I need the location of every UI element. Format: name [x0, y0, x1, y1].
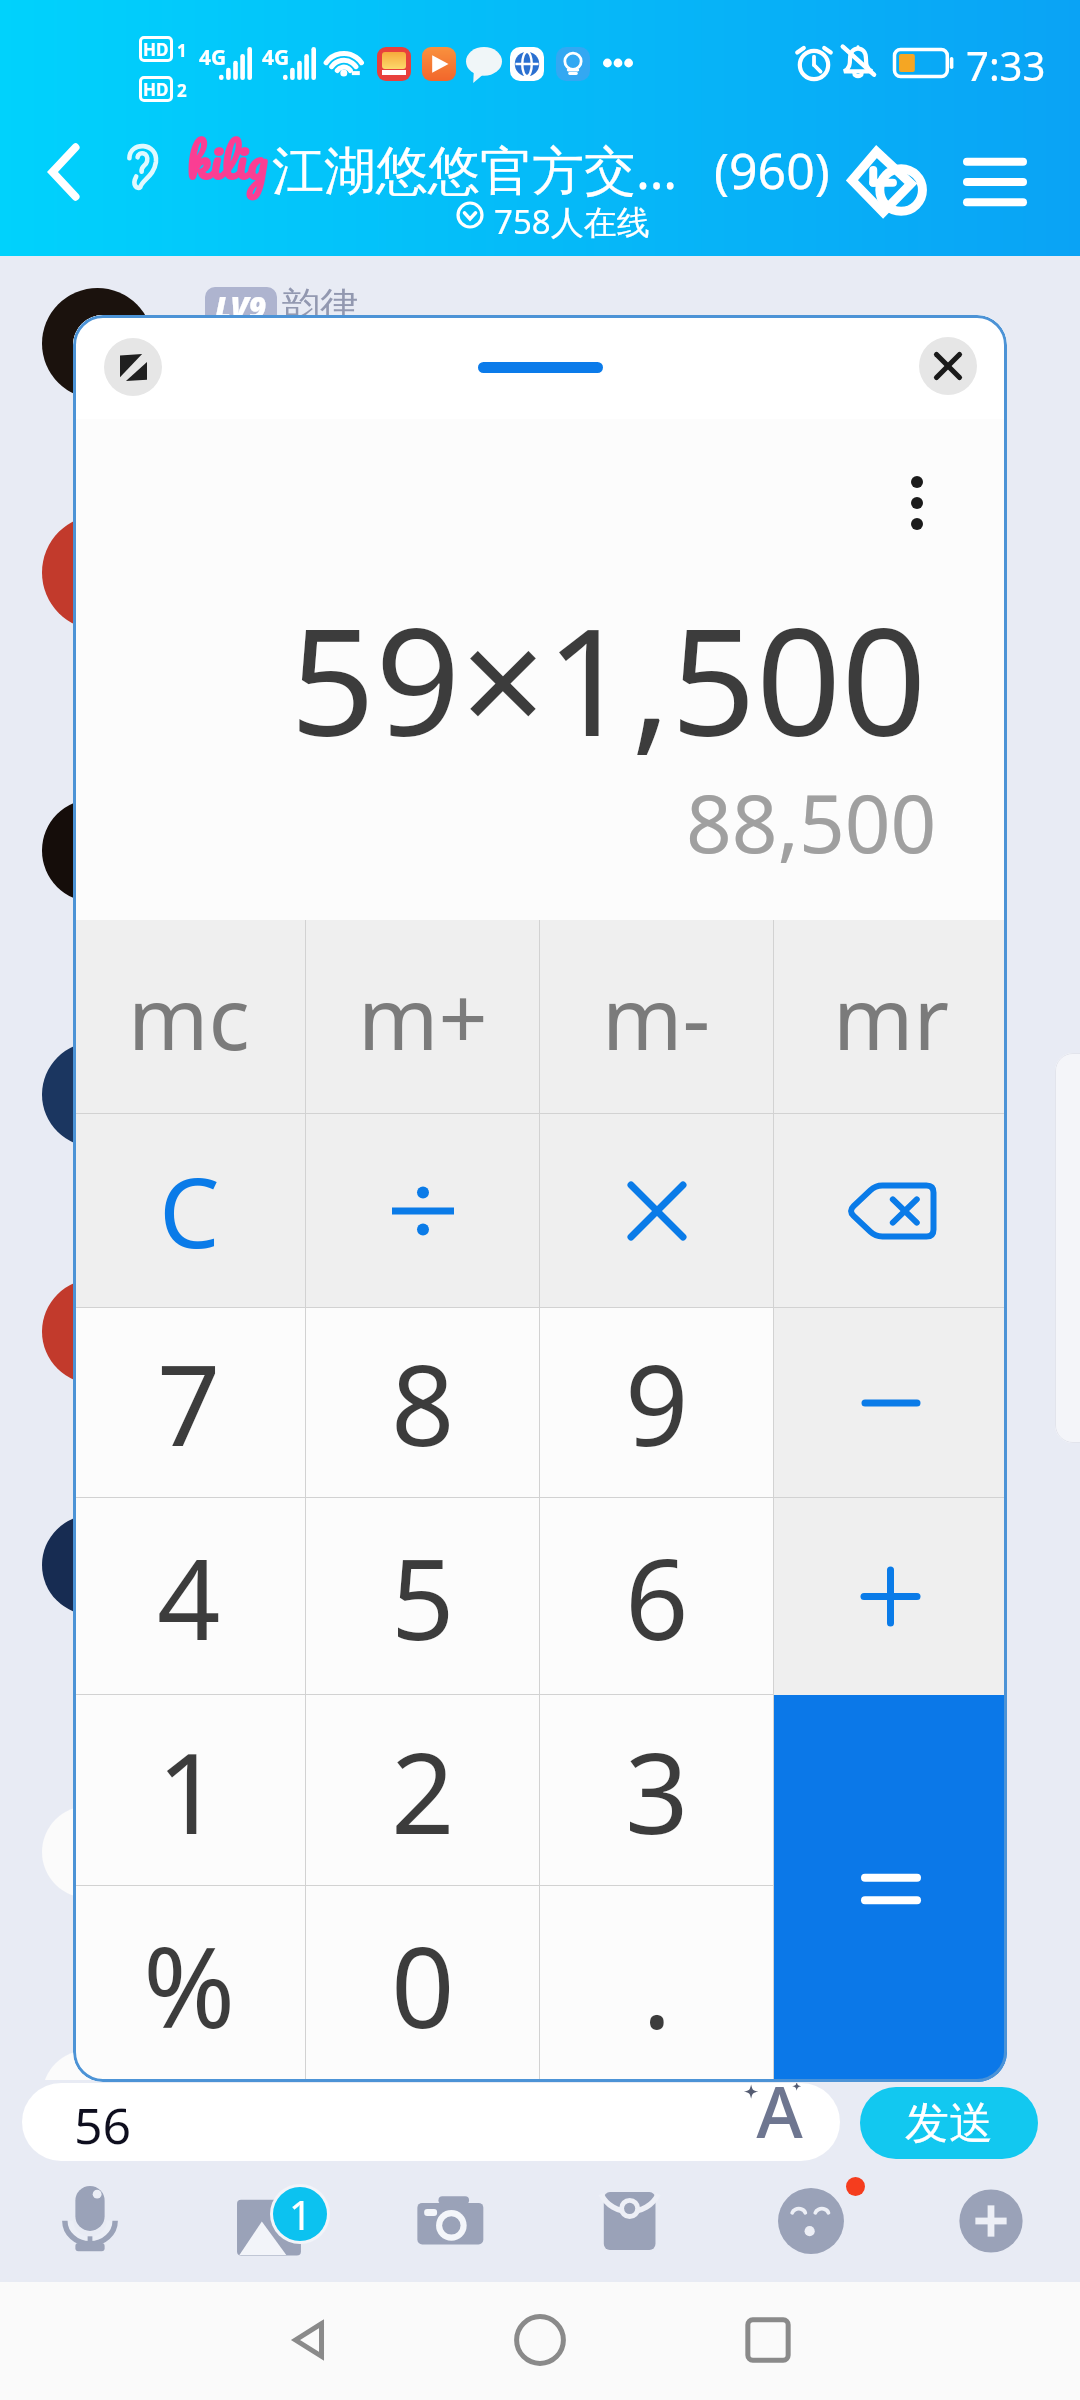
staticText: 4G — [262, 43, 290, 72]
staticText: 7 — [157, 1327, 221, 1478]
staticText: mc — [128, 958, 250, 1075]
staticText: 发送 — [905, 2096, 993, 2151]
button[interactable]: 2 — [306, 1695, 539, 1885]
button[interactable]: 6 — [540, 1498, 773, 1694]
staticText: 江湖悠悠官方交… — [272, 133, 678, 204]
staticText: 韵律 — [282, 282, 358, 330]
staticText: HD — [143, 78, 169, 101]
button[interactable]: Divide — [306, 1114, 539, 1307]
button[interactable]: Theme — [104, 338, 162, 396]
staticText: kilig — [186, 121, 267, 200]
staticText: 8 — [391, 1327, 455, 1478]
button[interactable]: m- — [540, 920, 773, 1113]
button[interactable]: Back — [26, 134, 102, 210]
button[interactable]: Translate — [742, 2084, 818, 2160]
button[interactable]: 0 — [306, 1886, 539, 2082]
staticText: . — [642, 1909, 672, 2060]
button[interactable]: 9 — [540, 1308, 773, 1497]
staticText: 5 — [391, 1521, 455, 1672]
staticText: 758人在线 — [494, 199, 650, 244]
button[interactable]: Album — [236, 2193, 304, 2261]
staticText: C — [159, 1145, 220, 1276]
button[interactable]: 4 — [73, 1498, 305, 1694]
staticText: 2 — [177, 79, 187, 102]
button[interactable] — [774, 1695, 1007, 2082]
button[interactable]: 56 — [22, 2083, 840, 2161]
staticText: 1 — [157, 1715, 221, 1866]
staticText: 7:33 — [966, 38, 1046, 92]
button[interactable]: 3 — [540, 1695, 773, 1885]
button[interactable]: Tags — [845, 140, 937, 228]
staticText: 1 — [289, 2187, 312, 2241]
button[interactable] — [774, 1498, 1007, 1695]
button[interactable]: m+ — [306, 920, 539, 1113]
button[interactable]: Menu — [950, 140, 1040, 224]
button[interactable]: 7 — [73, 1308, 305, 1497]
button[interactable]: Camera — [416, 2188, 484, 2256]
staticText: HD — [143, 38, 169, 61]
staticText: 88,500 — [686, 767, 937, 876]
button[interactable]: Recents — [736, 2308, 800, 2372]
button[interactable]: Emoji — [777, 2187, 845, 2255]
staticText: 56 — [74, 2091, 132, 2159]
staticText: (960) — [714, 136, 830, 204]
button[interactable]: 发送 — [860, 2087, 1038, 2159]
staticText: 4 — [157, 1521, 221, 1672]
staticText: A — [756, 2083, 804, 2138]
button[interactable] — [774, 1308, 1007, 1497]
button[interactable]: Voice message — [56, 2186, 124, 2254]
button[interactable]: Backspace — [774, 1114, 1007, 1307]
button[interactable]: mr — [774, 920, 1007, 1113]
button[interactable]: Home — [508, 2308, 572, 2372]
staticText: 3 — [625, 1715, 689, 1866]
button[interactable]: Multiply — [540, 1114, 773, 1307]
staticText: 59×1,500 — [290, 577, 927, 780]
staticText: m+ — [358, 958, 488, 1075]
button[interactable]: More options — [888, 474, 946, 532]
staticText: 9 — [625, 1327, 689, 1478]
button[interactable]: % — [73, 1886, 305, 2082]
button[interactable]: . — [540, 1886, 773, 2082]
button[interactable]: C — [73, 1114, 305, 1307]
staticText: % — [143, 1909, 236, 2060]
staticText: 0 — [391, 1909, 455, 2060]
staticText: 2 — [391, 1715, 455, 1866]
button[interactable]: Close — [919, 337, 977, 395]
staticText: 6 — [625, 1521, 689, 1672]
button[interactable]: Back — [278, 2308, 342, 2372]
button[interactable]: mc — [73, 920, 305, 1113]
staticText: m- — [602, 958, 711, 1075]
staticText: LV9 — [215, 287, 267, 327]
staticText: 4G — [199, 43, 227, 72]
button[interactable]: 8 — [306, 1308, 539, 1497]
button[interactable]: 1 — [73, 1695, 305, 1885]
button[interactable]: More — [957, 2187, 1025, 2255]
button[interactable]: 5 — [306, 1498, 539, 1694]
staticText: mr — [833, 958, 949, 1075]
button[interactable]: Red packet — [597, 2186, 665, 2254]
staticText: 1 — [177, 39, 187, 62]
